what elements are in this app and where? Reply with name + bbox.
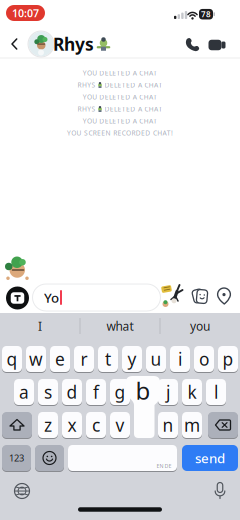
button[interactable]: j — [158, 379, 178, 405]
staticText: YOU SCREEN RECORDED CHAT! — [67, 129, 173, 137]
staticText: DELETED A CHAT — [104, 81, 162, 89]
button[interactable]: what — [85, 315, 155, 337]
staticText: Rhys — [53, 32, 94, 55]
button[interactable] — [214, 482, 226, 500]
staticText: d — [66, 380, 77, 403]
staticText: 10:07 — [12, 6, 39, 20]
staticText: Yo — [44, 289, 59, 306]
button[interactable]: you — [165, 315, 235, 337]
button[interactable]: r — [74, 346, 94, 372]
button[interactable]: t — [98, 346, 118, 372]
staticText: l — [214, 380, 218, 403]
staticText: YOU — [83, 69, 97, 77]
button[interactable]: l — [206, 379, 226, 405]
button[interactable] — [35, 445, 64, 471]
button[interactable]: e — [50, 346, 70, 372]
staticText: o — [199, 347, 209, 370]
staticText: k — [187, 380, 196, 403]
staticText: YOU — [83, 117, 97, 125]
staticText: YOU — [83, 93, 97, 101]
staticText: f — [93, 380, 99, 403]
staticText: h — [138, 380, 149, 403]
staticText: you — [190, 318, 210, 334]
button[interactable]: EN DE — [68, 445, 177, 471]
button[interactable]: Yo — [32, 284, 160, 311]
staticText: what — [106, 318, 133, 334]
button[interactable] — [208, 37, 226, 52]
staticText: b — [135, 375, 150, 406]
staticText: g — [114, 380, 125, 403]
button[interactable] — [190, 286, 210, 306]
staticText: e — [55, 347, 65, 370]
staticText: q — [6, 347, 17, 370]
staticText: n — [162, 413, 173, 436]
staticText: u — [150, 347, 161, 370]
button[interactable] — [2, 412, 32, 438]
staticText: DELETED A CHAT — [99, 69, 157, 77]
button[interactable]: o — [194, 346, 214, 372]
button[interactable]: z — [38, 412, 58, 438]
button[interactable]: h — [134, 379, 154, 405]
button[interactable]: send — [182, 445, 238, 471]
button[interactable] — [5, 32, 23, 55]
button[interactable]: x — [62, 412, 82, 438]
button[interactable]: c — [86, 412, 106, 438]
button[interactable]: i — [170, 346, 190, 372]
staticText: RHYS — [78, 105, 95, 113]
button[interactable]: Rhys — [53, 32, 110, 55]
staticText: 123 — [9, 452, 24, 464]
button[interactable] — [159, 282, 185, 308]
button[interactable] — [6, 286, 29, 309]
button[interactable]: p — [218, 346, 238, 372]
button[interactable]: s — [38, 379, 58, 405]
staticText: r — [80, 347, 87, 370]
staticText: z — [44, 413, 52, 436]
staticText: EN DE — [156, 462, 171, 470]
staticText: a — [19, 380, 29, 403]
staticText: t — [105, 347, 111, 370]
staticText: I — [38, 318, 42, 334]
staticText: send — [195, 449, 225, 467]
staticText: DELETED A CHAT — [99, 117, 157, 125]
button[interactable]: n — [158, 412, 178, 438]
staticText: RHYS — [78, 81, 95, 89]
button[interactable] — [13, 482, 30, 499]
button[interactable] — [185, 37, 200, 52]
button[interactable]: f — [86, 379, 106, 405]
button[interactable]: m — [182, 412, 202, 438]
button[interactable] — [214, 286, 234, 306]
staticText: s — [44, 380, 52, 403]
staticText: y — [127, 347, 136, 370]
button[interactable]: d — [62, 379, 82, 405]
button[interactable]: k — [182, 379, 202, 405]
staticText: 78 — [201, 9, 211, 19]
staticText: i — [178, 347, 182, 370]
button[interactable]: g — [110, 379, 130, 405]
button[interactable]: y — [122, 346, 142, 372]
staticText: w — [29, 347, 43, 370]
button[interactable]: q — [2, 346, 22, 372]
button[interactable] — [208, 412, 238, 438]
button[interactable]: a — [14, 379, 34, 405]
staticText: m — [184, 413, 200, 436]
staticText: x — [67, 413, 76, 436]
staticText: p — [222, 347, 233, 370]
staticText: v — [115, 413, 124, 436]
staticText: DELETED A CHAT — [104, 105, 162, 113]
button[interactable]: 123 — [2, 445, 31, 471]
button[interactable]: w — [26, 346, 46, 372]
staticText: j — [166, 380, 170, 403]
staticText: DELETED A CHAT — [99, 93, 157, 101]
button[interactable]: 10:07 — [6, 5, 45, 21]
button[interactable]: I — [5, 315, 75, 337]
staticText: c — [92, 413, 100, 436]
button[interactable] — [27, 30, 54, 57]
button[interactable]: v — [110, 412, 130, 438]
button[interactable]: u — [146, 346, 166, 372]
